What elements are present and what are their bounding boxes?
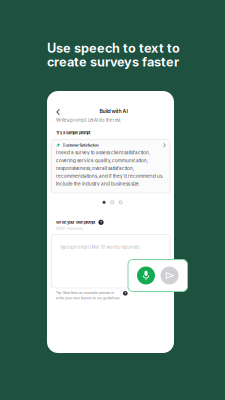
staticText: create surveys faster — [47, 54, 179, 70]
button[interactable]: Back — [53, 105, 63, 118]
staticText: Tip: Start from an example prompt or — [56, 291, 114, 295]
staticText: recommendations, and if they'd recommend… — [56, 173, 163, 179]
staticText: ? — [124, 291, 126, 295]
button[interactable]: Send — [160, 266, 178, 284]
button[interactable]: What makes a good prompt — [98, 220, 104, 225]
staticText: Try a sample prompt — [56, 130, 90, 135]
staticText: Build with AI — [99, 108, 127, 114]
staticText: responsiveness, overall satisfaction, — [56, 165, 134, 171]
staticText: ? — [100, 220, 102, 224]
staticText: Customer Satisfaction — [62, 143, 98, 147]
staticText: Type a prompt (Min 10 words required) — [59, 244, 140, 250]
staticText: 0/500 characters — [56, 227, 83, 230]
staticText: Include the industry and business size. — [56, 181, 140, 187]
staticText: Use speech to text to — [47, 40, 180, 56]
button[interactable]: Customer Satisfaction — [51, 139, 170, 193]
staticText: write your own based on our guidelines — [56, 296, 120, 300]
staticText: Write your own prompt — [56, 220, 95, 225]
staticText: covering service quality, communication, — [56, 158, 148, 163]
staticText: Write a prompt. Let AI do the rest. — [56, 117, 121, 123]
staticText: I need a survey to assess client satisfa… — [56, 150, 150, 155]
button[interactable]: Record with microphone — [137, 266, 155, 284]
